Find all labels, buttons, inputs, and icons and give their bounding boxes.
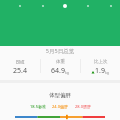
- staticText: 5月5日总览: [0, 47, 120, 55]
- staticText: 体重: [56, 59, 65, 65]
- staticText: 体型偏胖: [0, 92, 120, 99]
- staticText: 比上次: [94, 59, 108, 65]
- staticText: 18.5标准: [30, 104, 46, 109]
- button[interactable]: 体型偏胖: [0, 83, 120, 120]
- staticText: BMI: [16, 59, 25, 65]
- staticText: 1.9: [95, 66, 105, 76]
- button[interactable]: 5月5日总览: [0, 46, 120, 80]
- staticText: kg: [65, 70, 70, 75]
- button[interactable]: Page indicator: [0, 0, 120, 46]
- staticText: 24.0偏胖: [52, 104, 68, 109]
- staticText: 25.4: [13, 66, 27, 76]
- staticText: kg: [105, 70, 110, 75]
- staticText: 64.9: [51, 66, 65, 76]
- staticText: 28.0肥胖: [75, 104, 91, 109]
